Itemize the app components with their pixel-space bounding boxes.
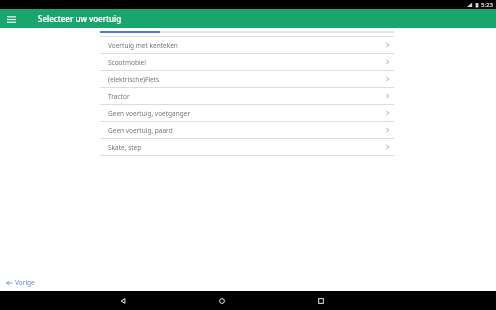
button[interactable]: Voertuig met kenteken [0, 37, 496, 54]
button[interactable]: (elektrische)Fiets [0, 71, 496, 88]
button[interactable]: Recent apps [304, 291, 338, 310]
button[interactable]: Vorige [4, 277, 37, 288]
staticText: Tractor [108, 92, 385, 101]
staticText: 5:23 [481, 1, 493, 9]
staticText: Geen voertuig, voetganger [108, 109, 385, 118]
button[interactable]: Back [106, 291, 140, 310]
staticText: Geen voertuig, paard [108, 126, 385, 135]
button[interactable]: Scootmobiel [0, 54, 496, 71]
button[interactable]: Open navigation menu [3, 11, 19, 27]
staticText: Scootmobiel [108, 58, 385, 67]
button[interactable]: Geen voertuig, paard [0, 122, 496, 139]
staticText: Voertuig met kenteken [108, 41, 385, 50]
staticText: Vorige [15, 278, 35, 287]
staticText: Skate, step [108, 143, 385, 152]
button[interactable]: Tractor [0, 88, 496, 105]
button[interactable]: Geen voertuig, voetganger [0, 105, 496, 122]
button[interactable]: Skate, step [0, 139, 496, 156]
staticText: (elektrische)Fiets [108, 75, 385, 84]
staticText: Selecteer uw voertuig [38, 13, 122, 24]
button[interactable]: Home [205, 291, 239, 310]
